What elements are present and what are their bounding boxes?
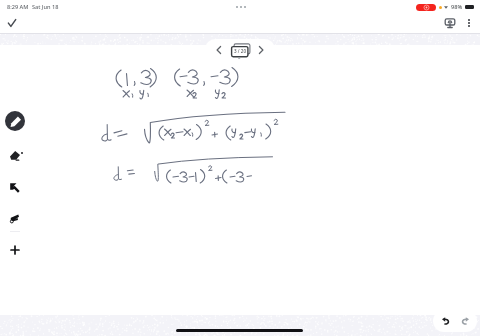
button[interactable]: Undo <box>436 311 456 331</box>
staticText: Sat Jun 18 <box>32 3 59 11</box>
button[interactable]: Next page <box>251 40 271 60</box>
staticText: 8:29 AM <box>7 3 29 11</box>
button[interactable]: Eraser <box>4 145 25 166</box>
button[interactable]: Lasso <box>4 208 25 229</box>
button[interactable]: More options <box>460 14 478 32</box>
button[interactable]: Select <box>4 177 25 198</box>
button[interactable]: Redo <box>455 311 475 331</box>
staticText: 98% <box>451 3 463 11</box>
button[interactable]: Pen tool <box>5 111 25 131</box>
button[interactable]: Previous page <box>209 40 229 60</box>
button[interactable]: Done <box>3 14 20 31</box>
button[interactable]: Add tool <box>4 239 25 260</box>
button[interactable]: Present to screen <box>441 14 459 32</box>
button[interactable]: Page 3 of 20 <box>229 39 252 60</box>
staticText: 3 / 20 <box>234 48 247 54</box>
